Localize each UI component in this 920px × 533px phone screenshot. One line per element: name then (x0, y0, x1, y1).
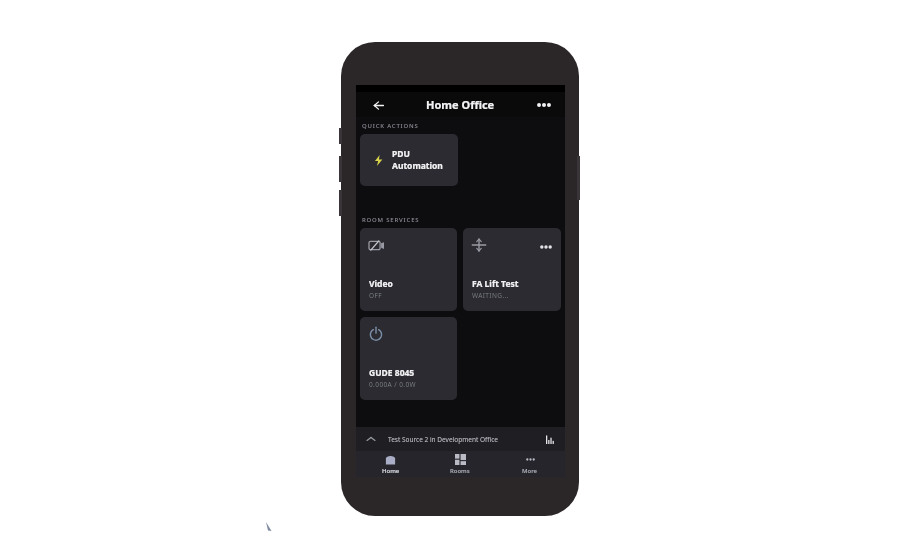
staticText: QUICK ACTIONS (362, 122, 419, 130)
staticText: Home Office (426, 97, 495, 112)
staticText: FA Lift Test (472, 278, 519, 290)
other: Lift test (472, 238, 486, 252)
staticText: PDU (392, 148, 410, 160)
button[interactable]: Home (356, 451, 425, 477)
button[interactable]: Expand (356, 427, 565, 451)
other: Equalizer (544, 433, 556, 445)
staticText: GUDE 8045 (369, 367, 415, 379)
button[interactable]: Lift test (463, 228, 561, 311)
staticText: More (522, 467, 538, 475)
staticText: Rooms (450, 467, 470, 475)
button[interactable]: Back (368, 95, 388, 115)
staticText: WAITING... (472, 291, 509, 300)
staticText: Test Source 2 in Development Office (388, 435, 544, 444)
button[interactable]: Card options (539, 240, 553, 254)
staticText: Home (382, 467, 400, 475)
other: Video off (369, 238, 384, 253)
other: Power (369, 327, 383, 341)
staticText: Video (369, 278, 393, 290)
staticText: ROOM SERVICES (362, 216, 420, 224)
button[interactable]: PDU (360, 134, 458, 186)
staticText: OFF (369, 291, 383, 300)
staticText: 0.000A / 0.0W (369, 380, 416, 389)
button[interactable]: More options (534, 95, 554, 115)
button[interactable]: Power (360, 317, 457, 400)
staticText: Automation (392, 160, 443, 172)
button[interactable]: Rooms (425, 451, 495, 477)
other: Expand (364, 432, 378, 446)
button[interactable]: More (495, 451, 565, 477)
button[interactable]: Video off (360, 228, 457, 311)
